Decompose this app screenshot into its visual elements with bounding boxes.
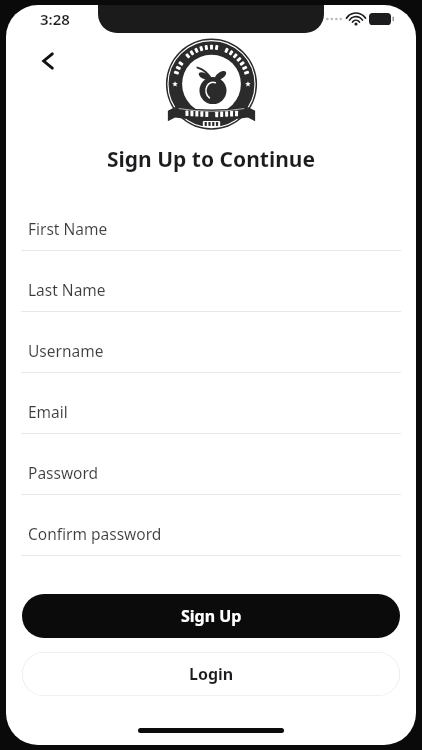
button[interactable]: Confirm password xyxy=(6,511,416,572)
staticText: Username xyxy=(28,340,104,361)
staticText: First Name xyxy=(28,218,108,239)
staticText: Last Name xyxy=(28,279,106,300)
button[interactable]: Back xyxy=(28,41,68,81)
staticText: Password xyxy=(28,462,99,483)
button[interactable]: Login xyxy=(22,652,400,696)
button[interactable]: Username xyxy=(6,328,416,389)
staticText: Email xyxy=(28,401,68,422)
button[interactable]: First Name xyxy=(6,206,416,267)
staticText: Login xyxy=(189,663,234,685)
button[interactable]: Last Name xyxy=(6,267,416,328)
staticText: Confirm password xyxy=(28,523,162,544)
staticText: 3:28 xyxy=(40,9,70,29)
staticText: Sign Up to Continue xyxy=(6,145,416,174)
button[interactable]: Password xyxy=(6,450,416,511)
button[interactable]: Email xyxy=(6,389,416,450)
button[interactable]: Sign Up xyxy=(22,594,400,638)
staticText: Sign Up xyxy=(181,605,242,627)
